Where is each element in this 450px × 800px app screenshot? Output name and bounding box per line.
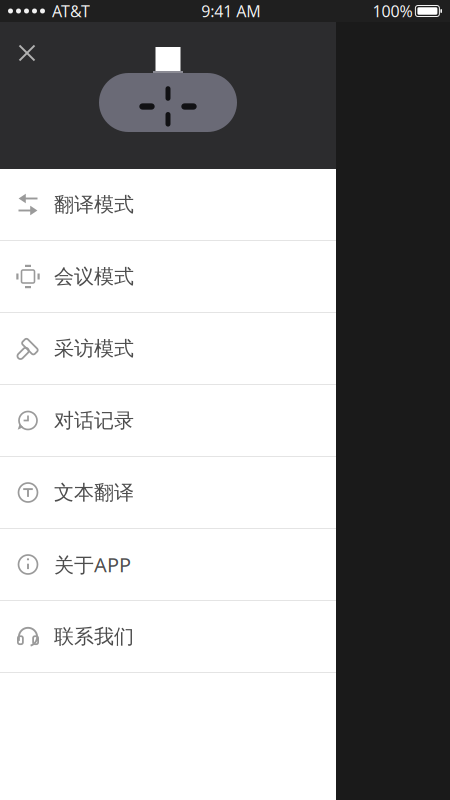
button[interactable]: 联系我们 [0,601,336,673]
staticText: 会议模式 [54,264,134,289]
staticText: AT&T [52,0,90,22]
staticText: 联系我们 [54,624,134,649]
button[interactable]: 文本翻译 [0,457,336,529]
staticText: 关于APP [54,551,131,578]
staticText: 对话记录 [54,408,134,433]
staticText: 100% [372,0,412,22]
button[interactable]: Close menu [6,32,48,74]
staticText: 文本翻译 [54,480,134,505]
button[interactable]: 翻译模式 [0,169,336,241]
button[interactable]: 关于APP [0,529,336,601]
button[interactable]: 采访模式 [0,313,336,385]
button[interactable]: 会议模式 [0,241,336,313]
staticText: 9:41 AM [201,0,261,22]
staticText: 采访模式 [54,336,134,361]
button[interactable]: 对话记录 [0,385,336,457]
staticText: 翻译模式 [54,192,134,217]
